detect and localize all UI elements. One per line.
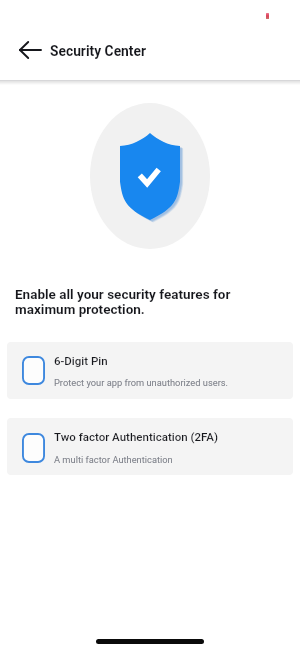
button[interactable]: 6-Digit Pin <box>7 342 293 399</box>
staticText: Security Center <box>50 43 146 59</box>
staticText: Protect your app from unauthorized users… <box>54 377 229 388</box>
staticText: Enable all your security features for ma… <box>15 286 231 317</box>
button[interactable]: Back <box>15 33 45 66</box>
button[interactable]: Two factor Authentication (2FA) <box>7 418 293 475</box>
staticText: Two factor Authentication (2FA) <box>54 430 218 443</box>
staticText: 6-Digit Pin <box>54 354 108 367</box>
staticText: A multi factor Authentication <box>54 454 173 465</box>
